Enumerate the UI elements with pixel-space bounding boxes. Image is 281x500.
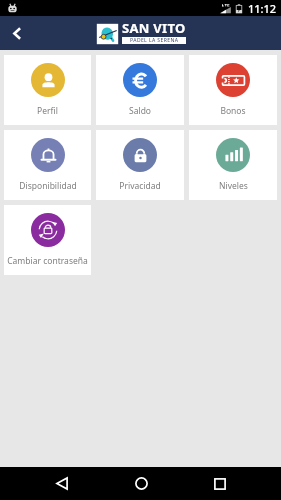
staticText: PADEL LA SERENA: [130, 37, 179, 44]
button[interactable]: Back: [35, 467, 89, 500]
staticText: 11:12: [248, 1, 277, 16]
staticText: Saldo: [129, 105, 151, 117]
staticText: Perfil: [37, 105, 58, 117]
button[interactable]: Back: [0, 16, 34, 50]
staticText: Privacidad: [119, 180, 161, 192]
staticText: Niveles: [219, 180, 248, 192]
button[interactable]: Bonos: [189, 55, 277, 125]
button[interactable]: Saldo: [96, 55, 184, 125]
button[interactable]: Privacidad: [96, 130, 184, 200]
staticText: Cambiar contraseña: [7, 255, 88, 267]
staticText: Bonos: [220, 105, 246, 117]
staticText: Disponibilidad: [19, 180, 77, 192]
button[interactable]: Niveles: [189, 130, 277, 200]
button[interactable]: Home: [114, 467, 168, 500]
staticText: SAN VITO: [122, 19, 186, 37]
button[interactable]: Recents: [193, 467, 247, 500]
button[interactable]: Cambiar contraseña: [4, 205, 91, 275]
button[interactable]: Disponibilidad: [4, 130, 91, 200]
button[interactable]: Perfil: [4, 55, 91, 125]
